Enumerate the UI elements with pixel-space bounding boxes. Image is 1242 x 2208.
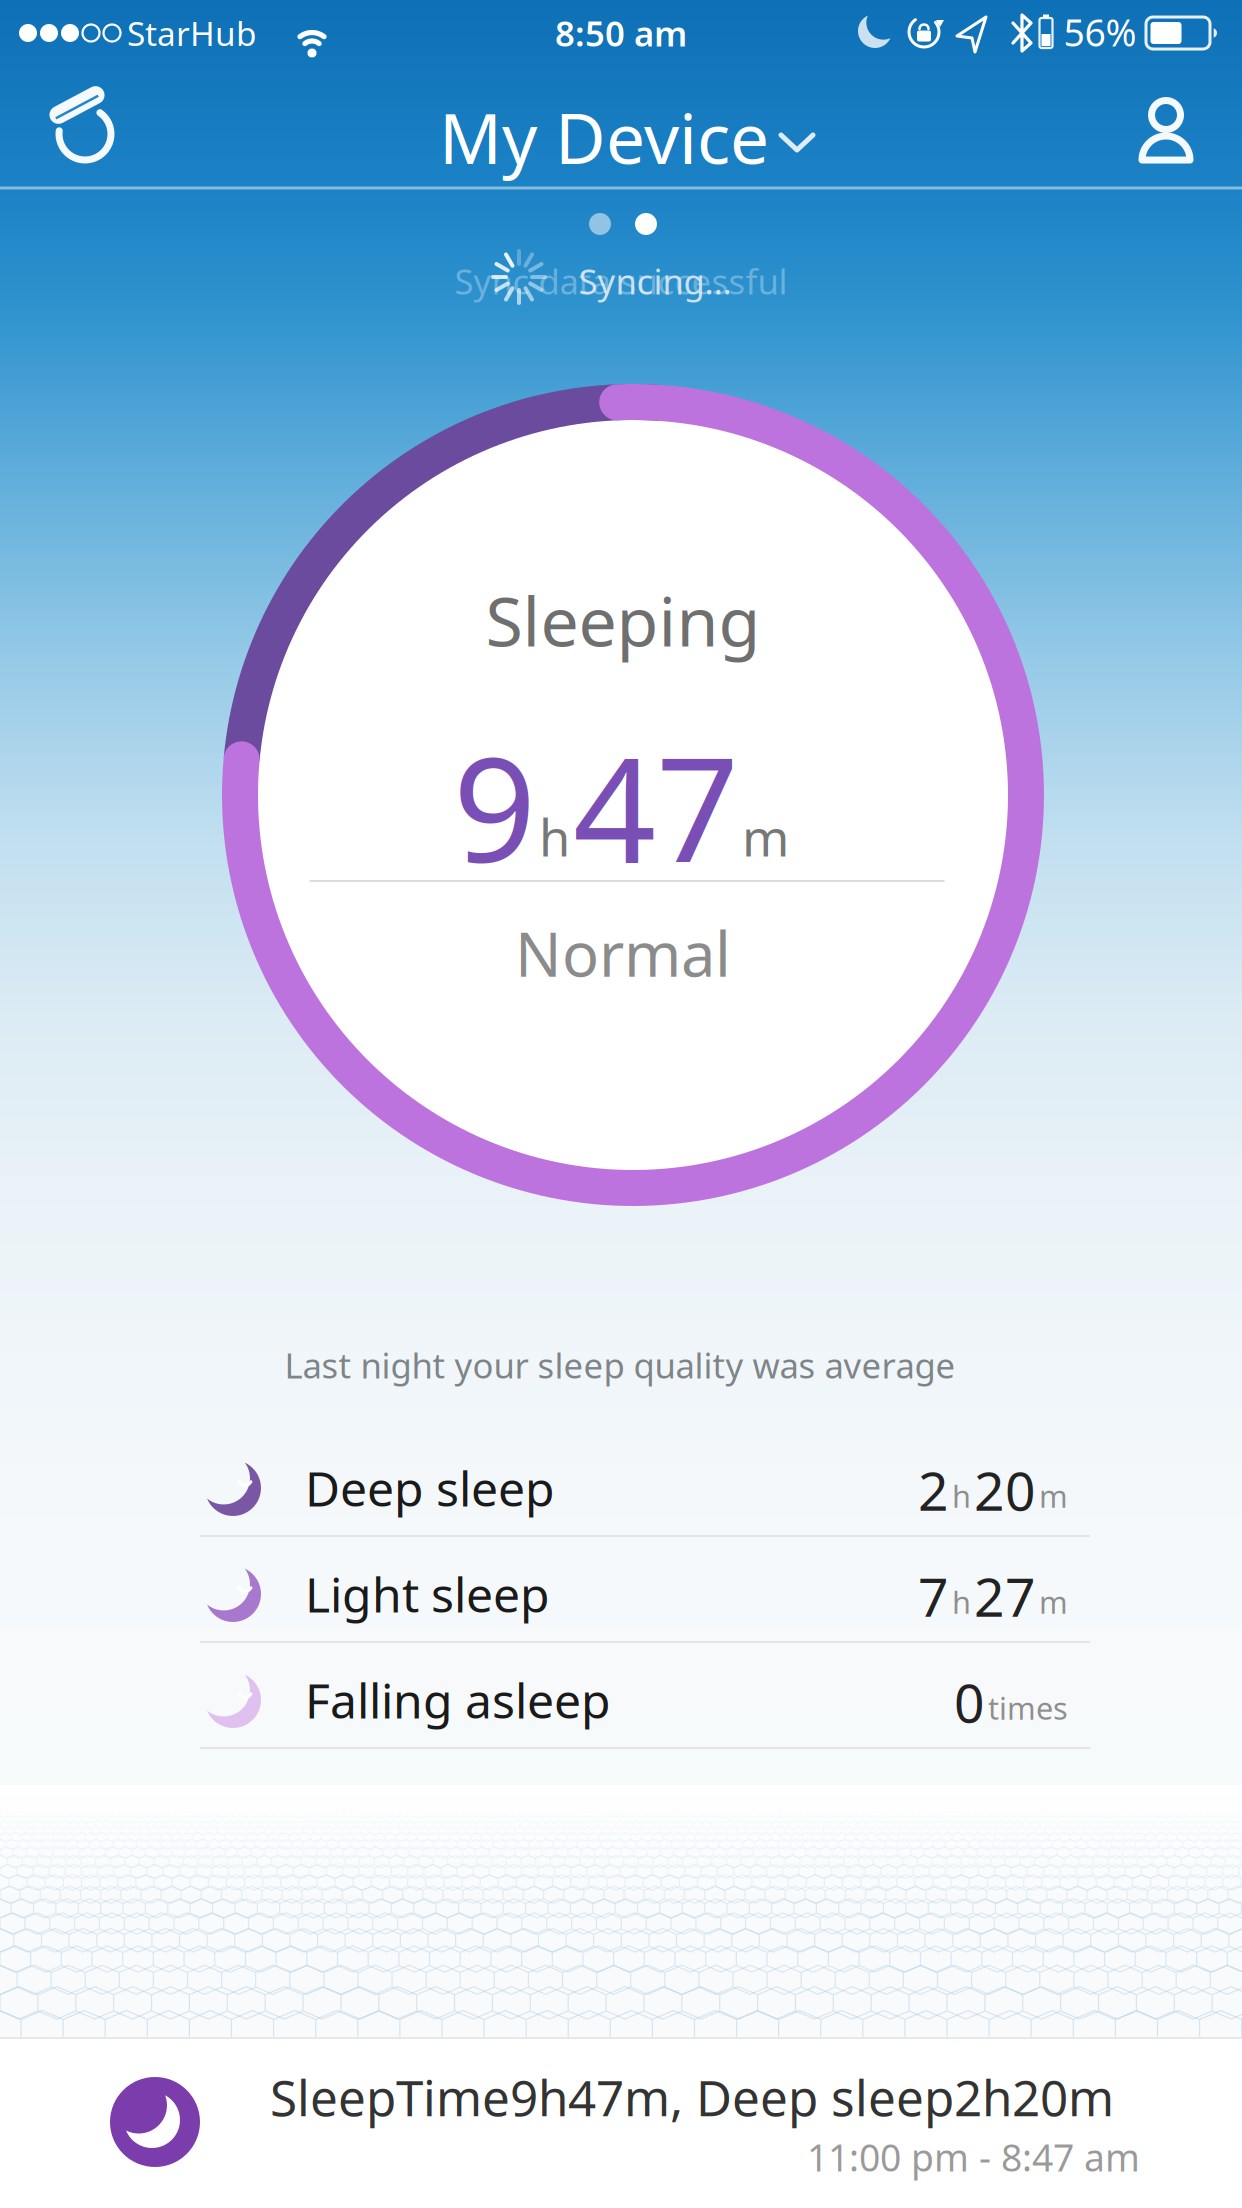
button[interactable]: SleepTime9h47m, Deep sleep2h20m	[0, 2037, 1242, 2208]
staticText: 27	[974, 1561, 1036, 1631]
staticText: Light sleep	[305, 1562, 550, 1626]
staticText: m	[742, 803, 789, 870]
staticText: Sleeping	[485, 575, 760, 665]
staticText: m	[1039, 1581, 1068, 1622]
staticText: Normal	[515, 912, 731, 994]
staticText: 8:50 am	[555, 10, 687, 56]
staticText: Last night your sleep quality was averag…	[284, 1342, 955, 1388]
staticText: StarHub	[127, 11, 257, 55]
staticText: 56%	[1063, 7, 1136, 57]
staticText: 20	[974, 1455, 1036, 1525]
staticText: h	[539, 803, 570, 870]
staticText: h	[952, 1581, 971, 1622]
button[interactable]: My Device	[439, 91, 815, 183]
staticText: My Device	[439, 91, 769, 183]
staticText: SleepTime9h47m, Deep sleep2h20m	[270, 2064, 1114, 2130]
staticText: 2	[918, 1455, 949, 1525]
staticText: h	[952, 1475, 971, 1516]
staticText: 7	[918, 1561, 949, 1631]
staticText: times	[988, 1687, 1068, 1728]
button[interactable]: Profile	[1121, 89, 1211, 179]
staticText: Falling asleep	[305, 1668, 611, 1732]
staticText: 9	[453, 709, 536, 902]
staticText: 11:00 pm - 8:47 am	[807, 2132, 1140, 2182]
staticText: Syncing...	[578, 258, 731, 304]
staticText: 0	[954, 1667, 985, 1737]
staticText: m	[1039, 1475, 1068, 1516]
staticText: Sync data successful	[454, 258, 787, 304]
staticText: 47	[573, 709, 739, 902]
button[interactable]: Device	[40, 87, 130, 177]
staticText: Deep sleep	[305, 1456, 555, 1520]
